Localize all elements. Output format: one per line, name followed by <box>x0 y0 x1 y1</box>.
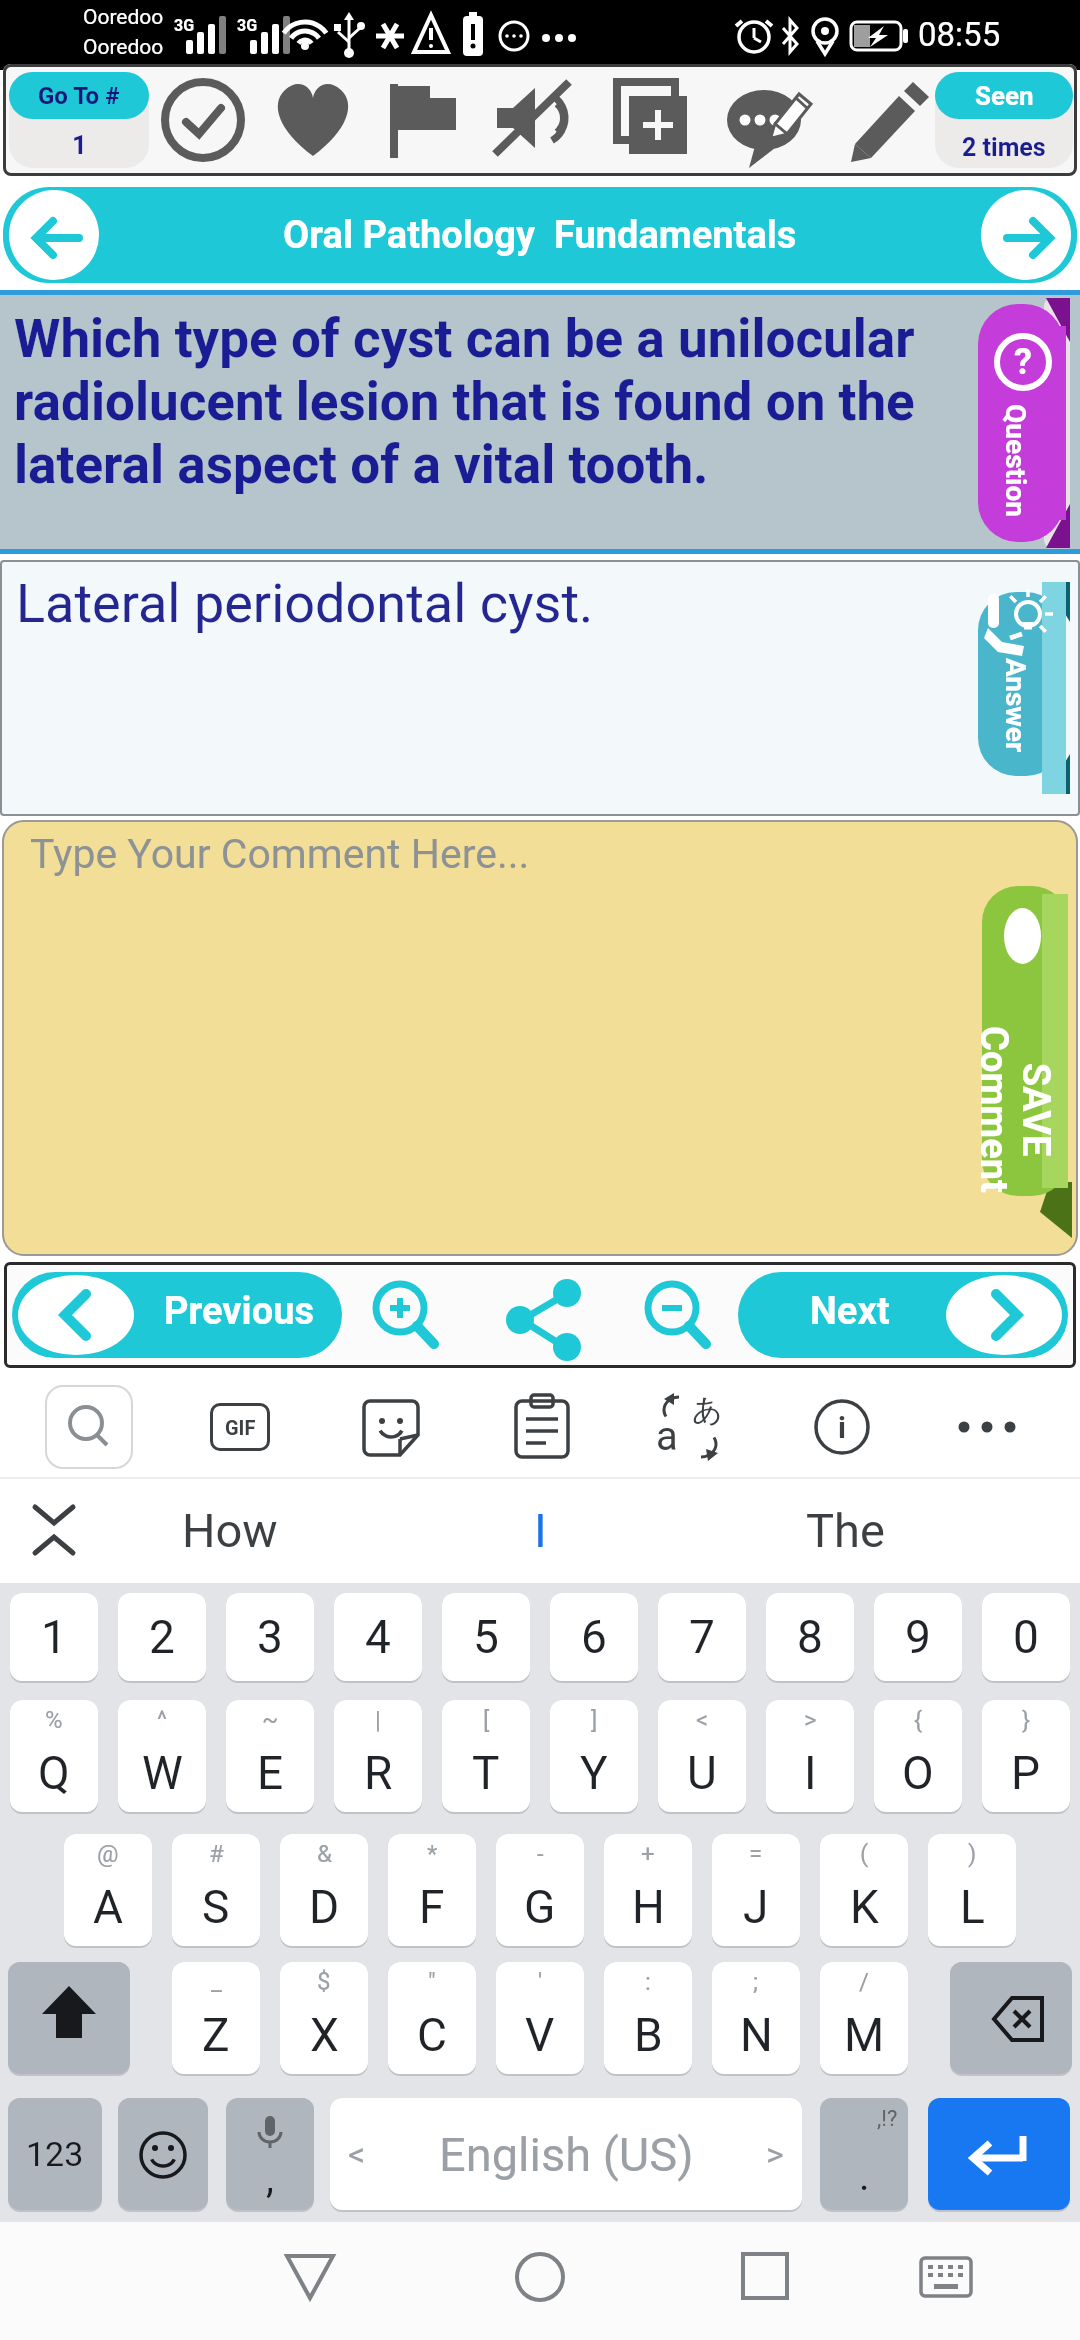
button[interactable]: } <box>982 1700 1070 1812</box>
staticText: S <box>202 1880 230 1934</box>
staticText: B <box>634 2008 663 2062</box>
button[interactable]: 5 <box>442 1593 530 1681</box>
button[interactable]: 2 <box>118 1593 206 1681</box>
button[interactable]: 9 <box>874 1593 962 1681</box>
button[interactable]: / <box>820 1962 908 2074</box>
staticText: ( <box>860 1840 869 1868</box>
button[interactable] <box>378 74 468 164</box>
button[interactable] <box>9 190 99 280</box>
button[interactable] <box>8 1962 130 2074</box>
button[interactable] <box>362 1399 420 1457</box>
button[interactable]: 1 <box>10 1593 98 1681</box>
staticText: Seen <box>975 81 1034 111</box>
button[interactable]: 0 <box>982 1593 1070 1681</box>
button[interactable]: > <box>766 1700 854 1812</box>
button[interactable]: 8 <box>766 1593 854 1681</box>
button[interactable]: * <box>388 1834 476 1946</box>
staticText: Z <box>202 2008 230 2062</box>
button[interactable] <box>500 2242 580 2318</box>
button[interactable] <box>504 1272 584 1362</box>
button[interactable]: _ <box>172 1962 260 2074</box>
button[interactable]: ( <box>820 1834 908 1946</box>
button[interactable]: Type Your Comment Here... <box>2 820 1078 1256</box>
button[interactable]: ] <box>550 1700 638 1812</box>
staticText: > <box>766 2134 784 2174</box>
button[interactable]: @ <box>64 1834 152 1946</box>
staticText: { <box>914 1706 923 1734</box>
button[interactable]: + <box>604 1834 692 1946</box>
button[interactable]: Next <box>738 1272 1068 1358</box>
staticText: GIF <box>225 1416 256 1439</box>
button[interactable]: i <box>814 1399 870 1455</box>
button[interactable] <box>950 1962 1072 2074</box>
staticText: ' <box>538 1968 543 1996</box>
button[interactable]: ; <box>712 1962 800 2074</box>
button[interactable]: English (US) <box>330 2098 802 2210</box>
button[interactable] <box>483 74 578 164</box>
button[interactable]: " <box>388 1962 476 2074</box>
button[interactable]: : <box>604 1962 692 2074</box>
button[interactable] <box>514 1395 570 1459</box>
staticText: ] <box>591 1706 598 1734</box>
button[interactable]: , <box>226 2098 314 2210</box>
button[interactable]: # <box>172 1834 260 1946</box>
staticText: _ <box>211 1968 222 1996</box>
button[interactable]: The <box>715 1477 975 1583</box>
button[interactable] <box>636 1278 716 1358</box>
staticText: 4 <box>365 1610 391 1664</box>
button[interactable]: I <box>410 1477 670 1583</box>
button[interactable]: ,!? <box>820 2098 908 2210</box>
button[interactable]: How <box>100 1477 360 1583</box>
button[interactable]: { <box>874 1700 962 1812</box>
staticText: [ <box>483 1706 490 1734</box>
button[interactable] <box>981 190 1071 280</box>
button[interactable]: Seen <box>935 72 1073 168</box>
button[interactable] <box>364 1278 444 1358</box>
button[interactable] <box>268 74 358 164</box>
button[interactable] <box>601 74 696 164</box>
button[interactable] <box>928 2098 1070 2210</box>
button[interactable] <box>906 2242 986 2318</box>
button[interactable] <box>45 1385 133 1469</box>
staticText: V <box>525 2008 555 2062</box>
button[interactable]: 6 <box>550 1593 638 1681</box>
staticText: The <box>806 1503 885 1558</box>
button[interactable] <box>950 1417 1030 1437</box>
button[interactable] <box>723 2242 803 2318</box>
button[interactable] <box>725 74 820 164</box>
button[interactable] <box>158 74 248 164</box>
staticText: 5 <box>473 1610 499 1664</box>
staticText: 8 <box>797 1610 823 1664</box>
button[interactable]: 123 <box>8 2098 102 2210</box>
button[interactable] <box>841 74 931 164</box>
button[interactable]: [ <box>442 1700 530 1812</box>
button[interactable]: = <box>712 1834 800 1946</box>
button[interactable]: Previous <box>12 1272 342 1358</box>
button[interactable]: 3 <box>226 1593 314 1681</box>
button[interactable]: ) <box>928 1834 1016 1946</box>
button[interactable]: ^ <box>118 1700 206 1812</box>
button[interactable]: ' <box>496 1962 584 2074</box>
button[interactable]: SAVE Comment <box>980 882 1076 1242</box>
button[interactable]: GIF <box>210 1403 270 1451</box>
staticText: a <box>656 1413 678 1460</box>
staticText: / <box>859 1968 869 1996</box>
button[interactable]: & <box>280 1834 368 1946</box>
button[interactable]: Go To # <box>9 72 149 168</box>
button[interactable]: 4 <box>334 1593 422 1681</box>
button[interactable]: 7 <box>658 1593 746 1681</box>
staticText: 7 <box>689 1610 715 1664</box>
button[interactable]: < <box>658 1700 746 1812</box>
button[interactable]: % <box>10 1700 98 1812</box>
button[interactable]: ~ <box>226 1700 314 1812</box>
button[interactable] <box>118 2098 208 2210</box>
button[interactable]: - <box>496 1834 584 1946</box>
staticText: Lateral periodontal cyst. <box>16 572 594 635</box>
staticText: * <box>427 1840 438 1868</box>
staticText: # <box>209 1840 224 1868</box>
button[interactable]: $ <box>280 1962 368 2074</box>
button[interactable] <box>270 2242 350 2318</box>
button[interactable]: a <box>650 1391 730 1461</box>
button[interactable]: | <box>334 1700 422 1812</box>
staticText: M <box>844 2008 885 2062</box>
